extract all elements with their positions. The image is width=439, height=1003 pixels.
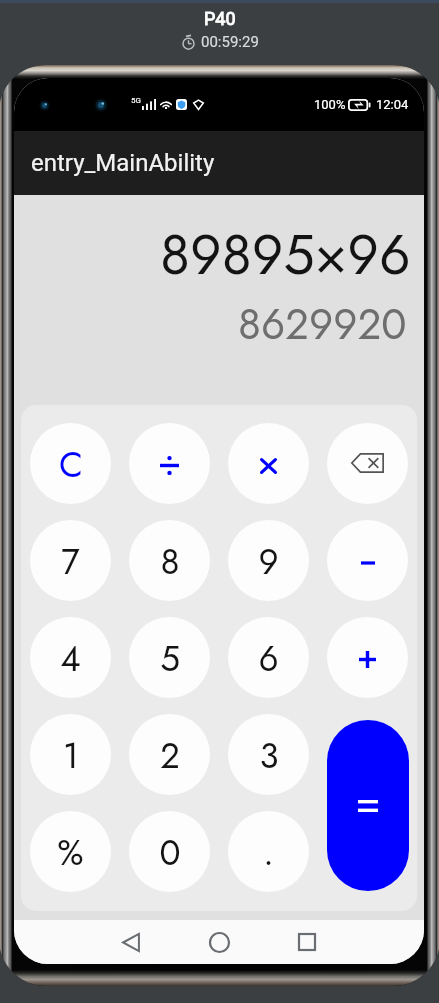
button[interactable]	[327, 520, 408, 601]
button[interactable]	[327, 617, 408, 698]
button[interactable]: Back	[110, 921, 152, 963]
button[interactable]	[327, 423, 408, 504]
button[interactable]: 2	[129, 714, 210, 795]
button[interactable]	[129, 423, 210, 504]
button[interactable]: entry_MainAbility	[14, 131, 424, 195]
button[interactable]: 6	[228, 617, 309, 698]
button[interactable]: 1	[30, 714, 111, 795]
staticText: 12:04	[376, 97, 409, 112]
button[interactable]	[327, 720, 409, 891]
button[interactable]: 8	[129, 520, 210, 601]
staticText: 5	[160, 634, 180, 685]
staticText: 6	[258, 634, 279, 685]
staticText: %	[57, 828, 84, 879]
staticText: 9	[258, 537, 279, 588]
button[interactable]: .	[228, 811, 309, 892]
staticText: 1	[63, 731, 79, 782]
staticText: 7	[61, 537, 80, 588]
button[interactable]: 3	[228, 714, 309, 795]
staticText: 3	[259, 731, 279, 782]
staticText: 8	[160, 537, 180, 588]
staticText: 00:59:29	[201, 33, 259, 51]
staticText: 89895×96	[160, 215, 411, 294]
staticText: 4	[60, 634, 81, 685]
staticText: 8629920	[238, 294, 407, 355]
staticText: C	[59, 440, 83, 491]
button[interactable]: %	[30, 811, 111, 892]
button[interactable]: 4	[30, 617, 111, 698]
staticText: 5G	[131, 96, 141, 105]
staticText: 0	[159, 828, 181, 879]
button[interactable]: Home	[198, 921, 240, 963]
button[interactable]	[228, 423, 309, 504]
staticText: .	[263, 828, 274, 879]
button[interactable]: 9	[228, 520, 309, 601]
staticText: 2	[160, 731, 180, 782]
staticText: P40	[204, 8, 236, 29]
button[interactable]: C	[30, 423, 111, 504]
staticText: entry_MainAbility	[31, 149, 215, 177]
button[interactable]: 5	[129, 617, 210, 698]
button[interactable]: 7	[30, 520, 111, 601]
button[interactable]: Recents	[286, 921, 328, 963]
staticText: 100%	[314, 97, 346, 112]
button[interactable]: 0	[129, 811, 210, 892]
